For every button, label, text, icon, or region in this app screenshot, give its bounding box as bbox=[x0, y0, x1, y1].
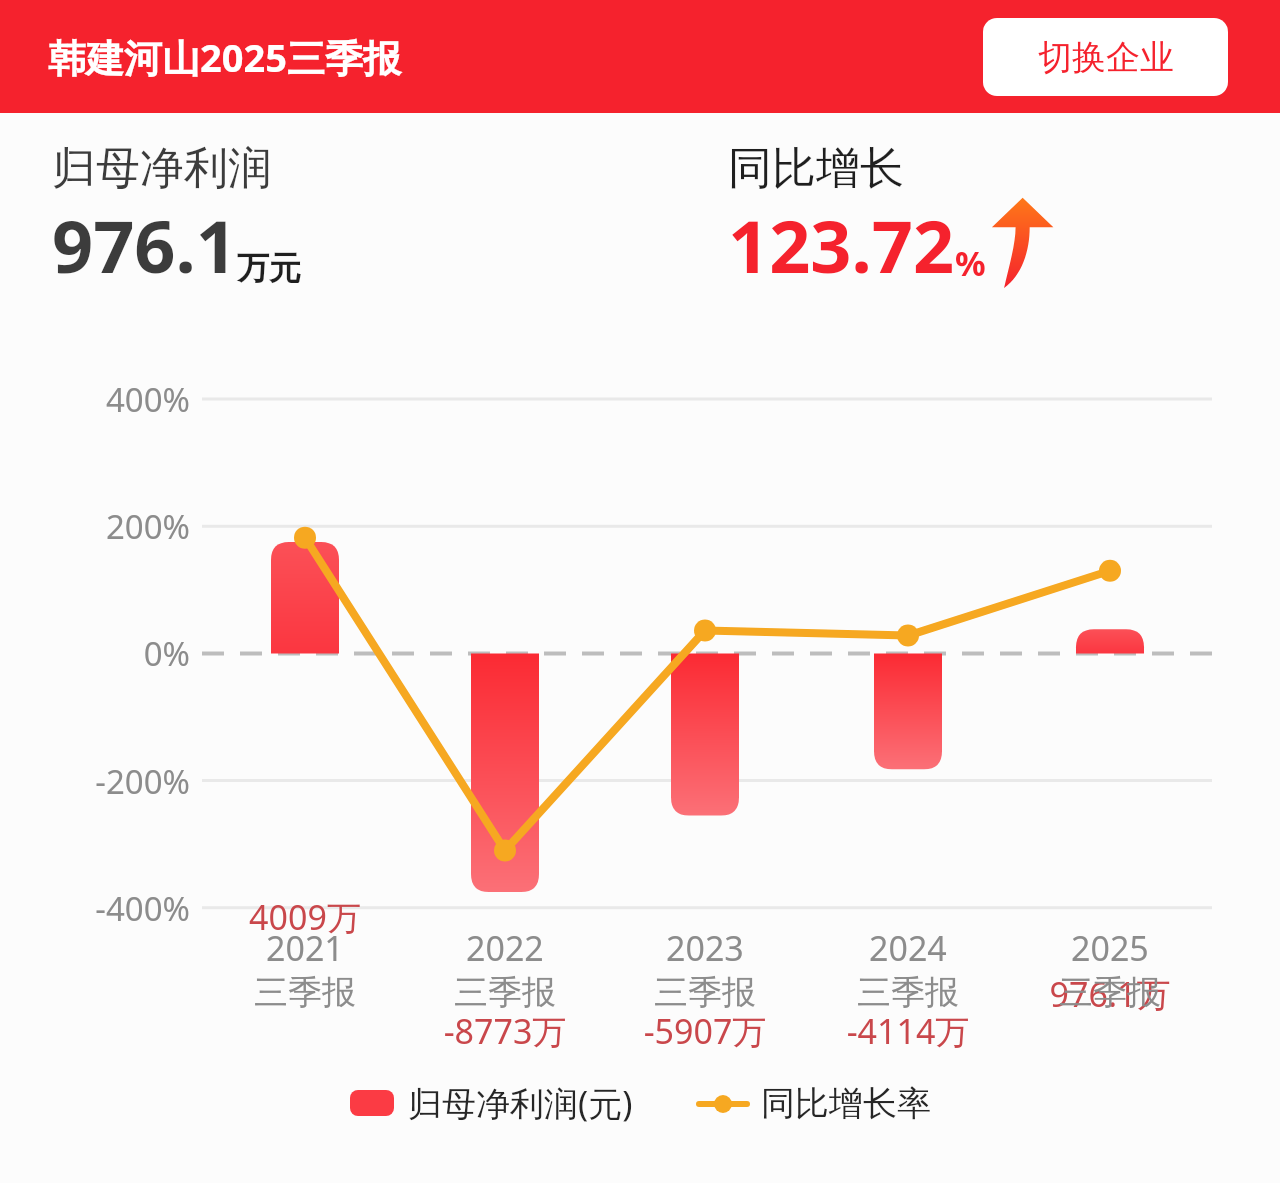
staticText: -400% bbox=[30, 886, 190, 931]
staticText: 4009万 bbox=[165, 894, 445, 940]
staticText: 123.72 bbox=[728, 196, 955, 294]
button[interactable]: 2024 bbox=[798, 925, 1018, 1014]
staticText: 976.1 bbox=[52, 196, 237, 294]
button[interactable]: 归母净利润(元) bbox=[350, 1080, 633, 1126]
staticText: 同比增长率 bbox=[761, 1082, 931, 1125]
staticText: 归母净利润(元) bbox=[408, 1080, 633, 1126]
staticText: 切换企业 bbox=[1038, 36, 1174, 79]
staticText: 万元 bbox=[237, 248, 301, 288]
staticText: 400% bbox=[30, 377, 190, 422]
button[interactable]: 2022 bbox=[395, 925, 615, 1014]
staticText: 2024 bbox=[869, 925, 947, 971]
staticText: % bbox=[955, 240, 986, 286]
button[interactable]: 2023 bbox=[595, 925, 815, 1014]
button[interactable]: 同比增长率 bbox=[699, 1082, 931, 1125]
staticText: -4114万 bbox=[768, 1008, 1048, 1054]
staticText: 2023 bbox=[666, 925, 744, 971]
staticText: 三季报 bbox=[254, 971, 356, 1014]
staticText: 2025 bbox=[1071, 925, 1149, 971]
staticText: 200% bbox=[30, 504, 190, 549]
staticText: 976.1万 bbox=[970, 971, 1250, 1017]
staticText: -8773万 bbox=[365, 1008, 645, 1054]
staticText: -5907万 bbox=[565, 1008, 845, 1054]
staticText: 0% bbox=[30, 631, 190, 676]
staticText: 三季报 bbox=[857, 971, 959, 1014]
button[interactable]: 2025 bbox=[1000, 925, 1220, 1014]
staticText: 归母净利润 bbox=[52, 141, 272, 196]
staticText: 2021 bbox=[266, 925, 344, 971]
other: 上升 bbox=[990, 196, 1054, 288]
button[interactable]: 切换企业 bbox=[983, 18, 1228, 96]
staticText: -200% bbox=[30, 759, 190, 804]
button[interactable]: 2021 bbox=[195, 925, 415, 1014]
staticText: 同比增长 bbox=[728, 141, 904, 196]
staticText: 韩建河山2025三季报 bbox=[48, 31, 401, 83]
staticText: 三季报 bbox=[654, 971, 756, 1014]
staticText: 三季报 bbox=[1059, 971, 1161, 1014]
staticText: 三季报 bbox=[454, 971, 556, 1014]
staticText: 2022 bbox=[466, 925, 544, 971]
